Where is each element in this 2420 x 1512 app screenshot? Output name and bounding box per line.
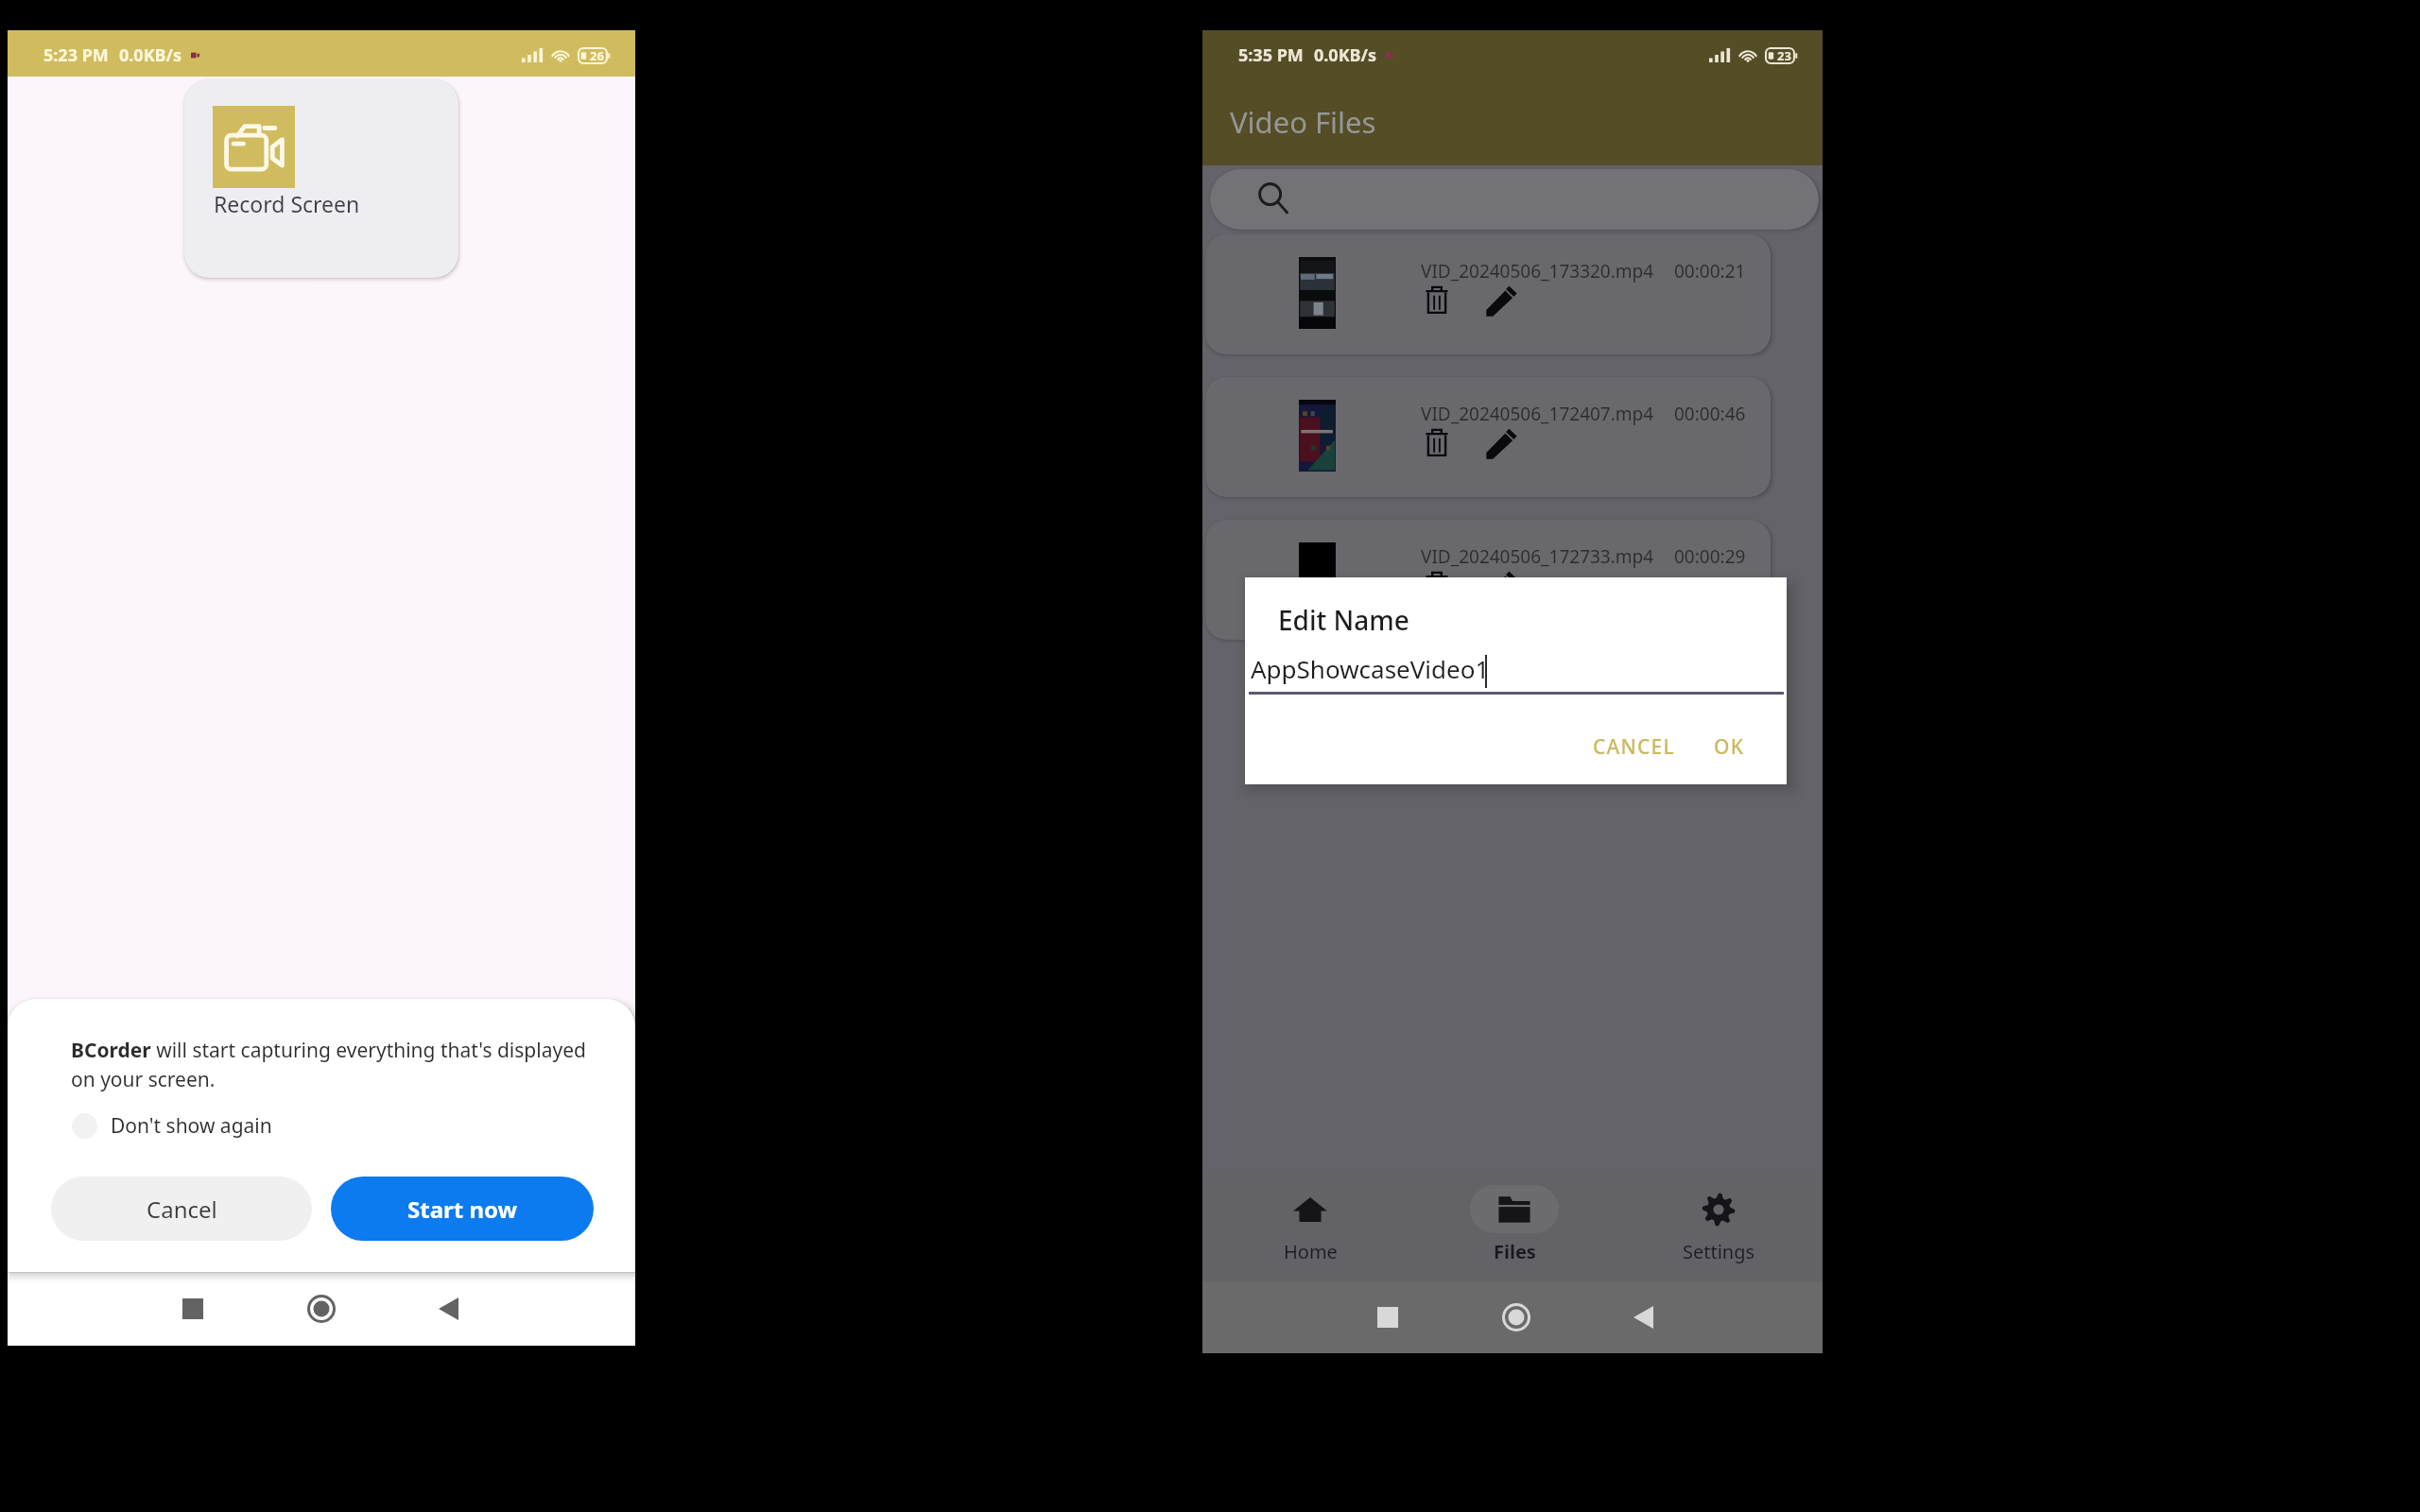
staticText: Record Screen: [214, 189, 360, 218]
button[interactable]: OK: [1701, 720, 1758, 774]
button[interactable]: Home: [284, 1272, 359, 1346]
staticText: 00:00:21: [1674, 259, 1746, 283]
button[interactable]: Recents: [1350, 1281, 1426, 1353]
staticText: Cancel: [147, 1194, 217, 1225]
staticText: OK: [1714, 733, 1745, 761]
staticText: Video Files: [1230, 102, 1376, 142]
staticText: Home: [1284, 1239, 1338, 1264]
staticText: 00:00:29: [1674, 544, 1746, 569]
button[interactable]: Cancel: [51, 1177, 312, 1241]
button[interactable]: Delete: [1426, 572, 1448, 599]
staticText: BCorder will start capturing everything …: [71, 1037, 619, 1092]
button[interactable]: Search: [1210, 169, 1819, 230]
button[interactable]: CANCEL: [1580, 720, 1688, 774]
button[interactable]: Don't show again: [62, 1103, 282, 1149]
staticText: VID_20240506_172733.mp4: [1421, 544, 1654, 569]
staticText: CANCEL: [1593, 733, 1675, 761]
staticText: Files: [1494, 1239, 1536, 1264]
staticText: Start now: [407, 1194, 518, 1225]
button[interactable]: VID_20240506_173320.mp4: [1205, 234, 1771, 354]
button[interactable]: Edit: [1486, 285, 1517, 317]
button[interactable]: Back: [1605, 1281, 1681, 1353]
button[interactable]: VID_20240506_172407.mp4: [1205, 377, 1771, 497]
staticText: 0.0KB/s: [119, 43, 182, 67]
staticText: AppShowcaseVideo1: [1251, 652, 1490, 685]
button[interactable]: Record Screen: [184, 79, 458, 278]
button[interactable]: Recents: [155, 1272, 231, 1346]
staticText: VID_20240506_173320.mp4: [1421, 259, 1654, 283]
staticText: 00:00:46: [1674, 402, 1746, 426]
button[interactable]: Edit: [1486, 571, 1517, 602]
staticText: 5:23 PM: [43, 43, 109, 67]
staticText: Edit Name: [1278, 602, 1409, 638]
button[interactable]: Start now: [331, 1177, 594, 1241]
staticText: 23: [1777, 47, 1791, 62]
staticText: VID_20240506_172407.mp4: [1421, 402, 1654, 426]
button[interactable]: VID_20240506_172733.mp4: [1205, 520, 1771, 640]
staticText: 5:35 PM: [1238, 43, 1304, 67]
staticText: 0.0KB/s: [1314, 43, 1377, 67]
button[interactable]: Home: [1478, 1281, 1554, 1353]
button[interactable]: Delete: [1426, 286, 1448, 314]
staticText: Don't show again: [111, 1112, 272, 1140]
button[interactable]: Files: [1462, 1174, 1566, 1281]
staticText: Settings: [1683, 1239, 1755, 1264]
button[interactable]: Delete: [1426, 429, 1448, 456]
button[interactable]: Home: [1258, 1174, 1362, 1281]
button[interactable]: Back: [410, 1272, 486, 1346]
staticText: 26: [590, 47, 604, 62]
button[interactable]: Edit: [1486, 428, 1517, 459]
button[interactable]: Settings: [1667, 1174, 1771, 1281]
